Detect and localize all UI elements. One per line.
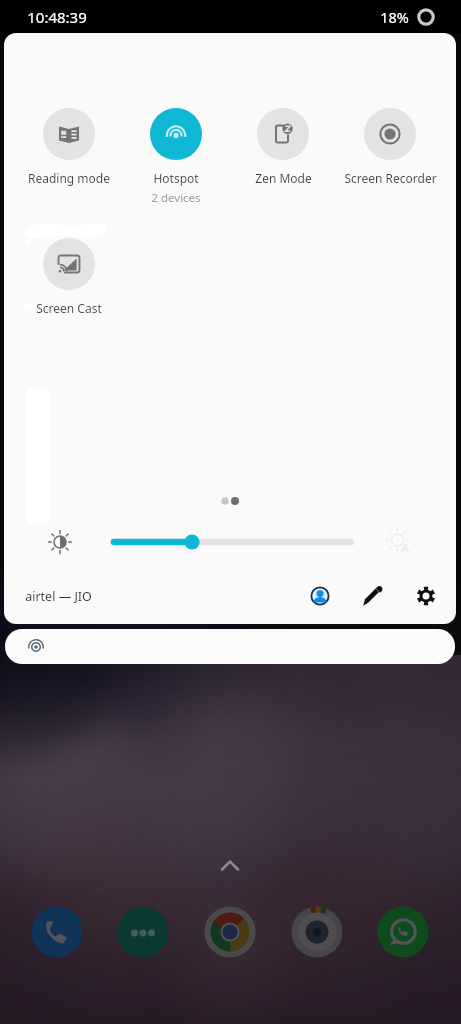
staticText: Zen Mode <box>255 170 312 186</box>
staticText: Screen Cast <box>36 300 102 316</box>
button[interactable]: Camera <box>290 905 344 959</box>
button[interactable]: Brightness <box>42 522 372 562</box>
staticText: 18% <box>380 7 409 27</box>
staticText: 2 devices <box>151 190 201 206</box>
button[interactable]: Hotspot is on notification <box>5 629 455 664</box>
button[interactable]: Phone <box>30 905 84 959</box>
staticText: Reading mode <box>28 170 110 186</box>
button[interactable]: Hotspot <box>123 108 229 206</box>
button[interactable]: Account <box>303 579 337 613</box>
staticText: 10:48:39 <box>27 7 87 27</box>
button[interactable]: Zen Mode <box>230 108 336 186</box>
staticText: Hotspot <box>153 170 199 186</box>
staticText: airtel — JIO <box>25 588 92 605</box>
button[interactable]: WhatsApp <box>376 905 430 959</box>
staticText: Screen Recorder <box>344 170 437 186</box>
button[interactable]: Reading mode <box>16 108 122 186</box>
button[interactable]: Messages <box>116 905 170 959</box>
button[interactable]: Screen Cast <box>16 238 122 316</box>
button[interactable]: Screen Recorder <box>337 108 443 186</box>
button[interactable]: Auto brightness <box>381 522 417 562</box>
button[interactable]: Settings <box>409 579 443 613</box>
button[interactable]: Edit <box>356 579 390 613</box>
button[interactable]: Chrome <box>203 905 257 959</box>
